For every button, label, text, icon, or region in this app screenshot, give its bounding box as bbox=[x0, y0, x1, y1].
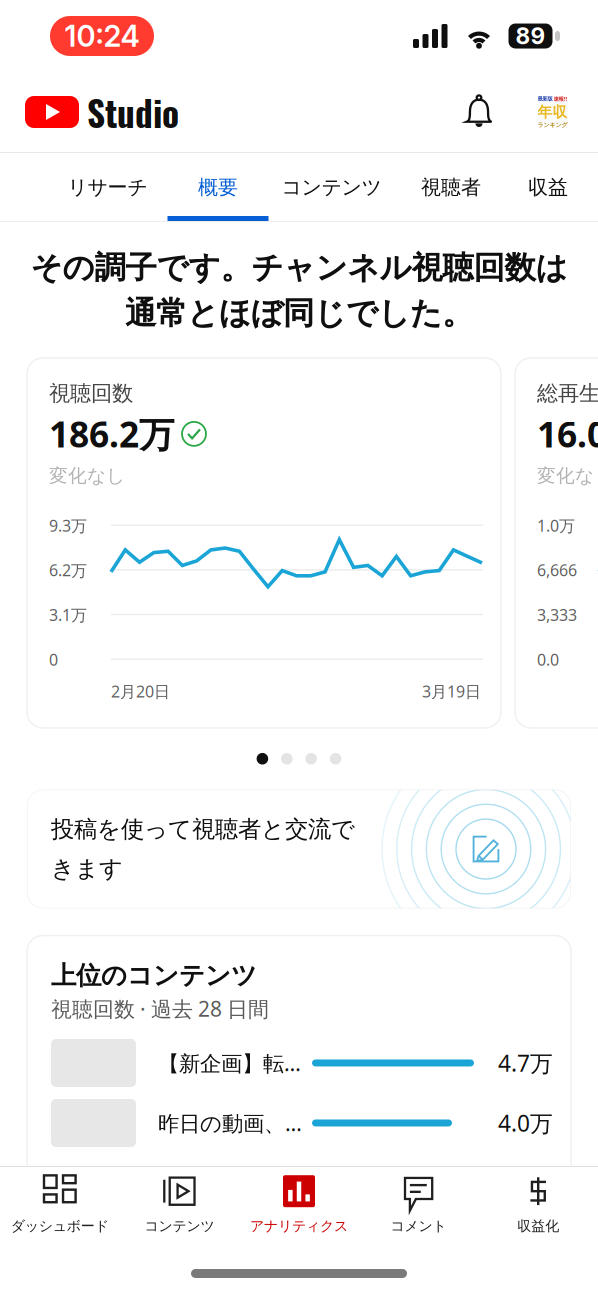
staticText: 速報!! bbox=[553, 95, 567, 102]
staticText: コンテンツ bbox=[281, 175, 381, 200]
button[interactable]: アナリティクス bbox=[239, 1167, 359, 1241]
staticText: ランキング bbox=[537, 121, 567, 129]
button[interactable]: コンテンツ bbox=[120, 1167, 239, 1241]
staticText: 3.1万 bbox=[49, 604, 87, 626]
staticText: 収益化 bbox=[517, 1217, 559, 1235]
button[interactable]: 投稿を使って視聴者と交流で きます bbox=[0, 789, 598, 908]
staticText: 6.2万 bbox=[49, 559, 87, 581]
staticText: 視聴者 bbox=[421, 175, 481, 200]
staticText: 視聴回数 · 過去 28 日間 bbox=[51, 994, 269, 1023]
staticText: 変化なし bbox=[537, 464, 598, 487]
staticText: 総再生時間 bbox=[537, 380, 598, 407]
staticText: コメント bbox=[391, 1217, 447, 1235]
staticText: 1.0万 bbox=[537, 515, 575, 536]
staticText: 89 bbox=[515, 22, 545, 50]
staticText: 概要 bbox=[198, 175, 238, 200]
staticText: 通常とほぼ同じでした。 bbox=[125, 293, 473, 333]
staticText: 変化なし bbox=[49, 464, 125, 487]
button[interactable]: 概要 bbox=[171, 153, 265, 221]
staticText: 最新版 bbox=[537, 95, 552, 102]
button[interactable]: 通知 bbox=[451, 84, 507, 140]
staticText: 0.0 bbox=[537, 649, 559, 670]
staticText: リサーチ bbox=[67, 175, 147, 200]
staticText: 【新企画】転… bbox=[158, 1048, 301, 1077]
staticText: 年収 bbox=[537, 103, 567, 121]
staticText: 上位のコンテンツ bbox=[51, 959, 257, 991]
staticText: 2月20日 bbox=[111, 680, 170, 702]
button[interactable]: 収益化 bbox=[478, 1167, 598, 1241]
button[interactable]: ダッシュボード bbox=[0, 1167, 120, 1241]
staticText: 昨日の動画、… bbox=[158, 1108, 302, 1137]
button[interactable]: 収益 bbox=[504, 153, 592, 221]
staticText: ダッシュボード bbox=[11, 1217, 109, 1235]
staticText: 10:24 bbox=[64, 18, 139, 54]
button[interactable]: リサーチ bbox=[44, 153, 171, 221]
staticText: 視聴回数 bbox=[49, 380, 133, 407]
staticText: 4.7万 bbox=[498, 1047, 553, 1078]
staticText: 収益 bbox=[528, 175, 568, 200]
button[interactable]: コンテンツ bbox=[265, 153, 398, 221]
staticText: 投稿を使って視聴者と交流で きます bbox=[51, 815, 355, 883]
staticText: 0 bbox=[49, 649, 58, 670]
staticText: 186.2万 bbox=[49, 410, 174, 458]
staticText: Studio bbox=[87, 86, 179, 138]
staticText: その調子です。チャンネル視聴回数は bbox=[30, 248, 567, 287]
staticText: コンテンツ bbox=[144, 1217, 214, 1235]
staticText: アナリティクス bbox=[250, 1217, 348, 1235]
button[interactable]: コメント bbox=[359, 1167, 478, 1241]
staticText: 6,666 bbox=[537, 559, 577, 581]
staticText: 3,333 bbox=[537, 604, 577, 626]
staticText: 4.0万 bbox=[498, 1107, 553, 1138]
button[interactable]: 視聴者 bbox=[398, 153, 504, 221]
button[interactable]: アカウント bbox=[537, 99, 568, 124]
staticText: 3月19日 bbox=[422, 680, 481, 702]
staticText: 9.3万 bbox=[49, 515, 87, 536]
staticText: 16.0 bbox=[537, 410, 598, 458]
